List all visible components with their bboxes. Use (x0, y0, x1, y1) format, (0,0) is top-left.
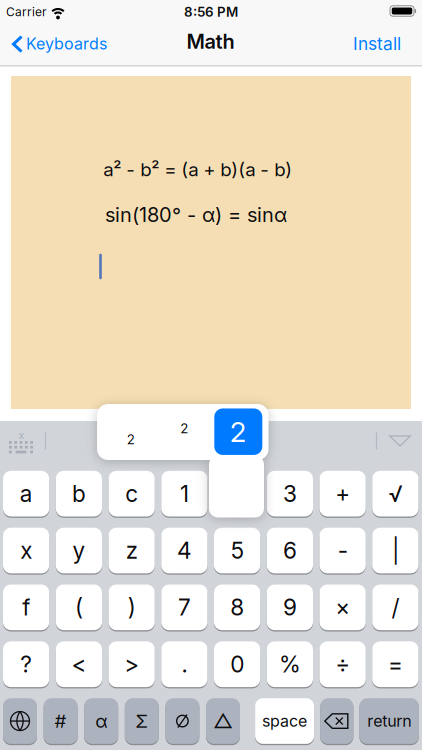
button[interactable]: ( (56, 584, 102, 630)
staticText: ) (128, 594, 136, 621)
button[interactable]: α (84, 698, 118, 744)
button[interactable]: △ (206, 698, 240, 744)
button[interactable]: × (319, 584, 366, 630)
button[interactable]: x (3, 528, 49, 573)
staticText: △ (213, 709, 233, 733)
button[interactable]: superscript 2 (164, 408, 204, 448)
staticText: - (338, 537, 348, 564)
staticText: # (55, 710, 67, 732)
button[interactable]: ? (3, 641, 49, 687)
staticText: 5 (231, 537, 244, 564)
button[interactable]: return (359, 698, 419, 744)
staticText: x (18, 429, 24, 441)
staticText: c (125, 480, 138, 507)
button[interactable]: 7 (161, 584, 207, 630)
staticText: × (335, 594, 350, 621)
staticText: . (181, 651, 187, 678)
staticText: / (391, 594, 399, 621)
staticText: √ (388, 480, 402, 507)
button[interactable]: y (56, 528, 102, 573)
button[interactable]: 9 (267, 584, 313, 630)
staticText: > (124, 651, 139, 678)
staticText: b (72, 480, 86, 507)
button[interactable]: + (319, 471, 366, 516)
staticText: a (20, 480, 33, 507)
staticText: return (367, 712, 411, 730)
staticText: Install (353, 33, 401, 54)
staticText: 9 (283, 594, 297, 621)
staticText: z (126, 537, 138, 564)
staticText: Math (186, 30, 234, 53)
button[interactable]: ÷ (319, 641, 366, 687)
button[interactable]: c (108, 471, 155, 516)
button[interactable]: subscript 2 (111, 419, 151, 459)
staticText: space (262, 712, 307, 730)
button[interactable]: 4 (161, 528, 207, 573)
button[interactable]: - (319, 528, 366, 573)
button[interactable]: 8 (214, 584, 260, 630)
button[interactable]: < (56, 641, 102, 687)
staticText: | (392, 537, 399, 564)
button[interactable]: 1 (161, 471, 207, 516)
staticText: 2 (230, 415, 247, 448)
button[interactable]: Σ (125, 698, 159, 744)
staticText: 8 (230, 594, 244, 621)
button[interactable]: # (44, 698, 78, 744)
button[interactable]: Delete (320, 698, 353, 744)
button[interactable]: a (3, 471, 49, 516)
button[interactable]: 0 (214, 641, 260, 687)
staticText: a² - b² = (a + b)(a - b) (103, 158, 292, 180)
staticText: Keyboards (26, 34, 107, 53)
staticText: sin(180° - α) = sinα (105, 203, 287, 226)
button[interactable]: f (3, 584, 49, 630)
staticText: < (71, 651, 86, 678)
staticText: x (20, 537, 32, 564)
staticText: 7 (178, 594, 191, 621)
staticText: α (95, 710, 107, 732)
button[interactable]: 6 (267, 528, 313, 573)
staticText: f (22, 594, 30, 621)
staticText: 1 (180, 480, 189, 507)
button[interactable]: b (56, 471, 102, 516)
button[interactable]: 5 (214, 528, 260, 573)
button[interactable]: ) (108, 584, 155, 630)
button[interactable]: Next keyboard (3, 698, 37, 744)
button[interactable]: | (372, 528, 418, 573)
staticText: ? (20, 651, 32, 678)
button[interactable]: z (108, 528, 155, 573)
button[interactable]: space (255, 698, 314, 744)
button[interactable]: > (108, 641, 155, 687)
staticText: 3 (283, 480, 297, 507)
staticText: ( (75, 594, 83, 621)
staticText: 0 (230, 651, 244, 678)
button[interactable]: 2 (214, 408, 262, 455)
staticText: = (388, 651, 403, 678)
button[interactable]: = (372, 641, 418, 687)
staticText: 6 (283, 537, 297, 564)
button[interactable]: 3 (267, 471, 313, 516)
staticText: ÷ (335, 651, 350, 678)
button[interactable]: % (267, 641, 313, 687)
staticText: + (335, 480, 350, 507)
staticText: 4 (177, 537, 192, 564)
button[interactable]: empty set (165, 698, 199, 744)
button[interactable]: √ (372, 471, 418, 516)
button[interactable]: Dismiss keyboard (389, 435, 411, 447)
button[interactable]: Install (311, 29, 401, 59)
button[interactable]: / (372, 584, 418, 630)
button[interactable]: Hide custom keyboard (3, 429, 39, 457)
staticText: 2 (180, 420, 188, 436)
button[interactable]: Back (12, 29, 162, 59)
staticText: 8:56 PM (184, 4, 238, 20)
staticText: y (72, 537, 85, 564)
staticText: 2 (127, 432, 135, 447)
staticText: % (279, 651, 301, 678)
staticText: Σ (135, 710, 148, 732)
button[interactable]: . (161, 641, 207, 687)
staticText: Carrier (6, 5, 47, 19)
